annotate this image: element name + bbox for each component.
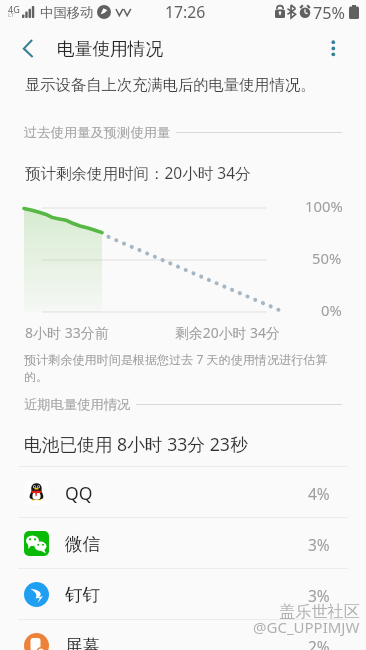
staticText: 2% (308, 636, 330, 650)
staticText: 近期电量使用情况 (24, 396, 131, 413)
staticText: 微信 (65, 533, 101, 555)
staticText: 17:26 (165, 1, 206, 23)
staticText: 钉钉 (65, 584, 101, 606)
button[interactable]: 钉钉 (0, 569, 366, 619)
staticText: 50% (312, 248, 342, 268)
staticText: 3% (308, 534, 330, 555)
staticText: 剩余20小时 34分 (175, 323, 280, 342)
staticText: QQ (65, 481, 93, 505)
button[interactable]: QQ (0, 467, 366, 517)
staticText: 显示设备自上次充满电后的电量使用情况。 (25, 75, 316, 94)
button[interactable]: More options (313, 26, 353, 60)
staticText: 屏幕 (65, 635, 101, 650)
staticText: 3% (308, 585, 330, 606)
staticText: 过去使用量及预测使用量 (24, 124, 171, 141)
staticText: 100% (305, 196, 343, 216)
staticText: 8小时 33分前 (25, 323, 109, 342)
button[interactable]: Back (6, 26, 46, 60)
staticText: 75% (313, 2, 345, 24)
button[interactable]: 屏幕 (0, 620, 366, 650)
staticText: 中国移动 (40, 4, 94, 21)
staticText: @GC_UPPIMJW (253, 617, 360, 637)
staticText: 盖乐世社区 (279, 601, 360, 621)
staticText: 电池已使用 8小时 33分 23秒 (24, 432, 248, 456)
staticText: 4% (308, 483, 330, 504)
staticText: 预计剩余使用时间：20小时 34分 (25, 162, 251, 183)
staticText: 预计剩余使用时间是根据您过去 7 天的使用情况进行估算的。 (24, 351, 346, 385)
button[interactable]: 微信 (0, 518, 366, 568)
staticText: 4G (8, 3, 20, 15)
staticText: 0% (321, 300, 342, 320)
staticText: 电量使用情况 (57, 38, 164, 60)
staticText: LT (8, 11, 15, 19)
